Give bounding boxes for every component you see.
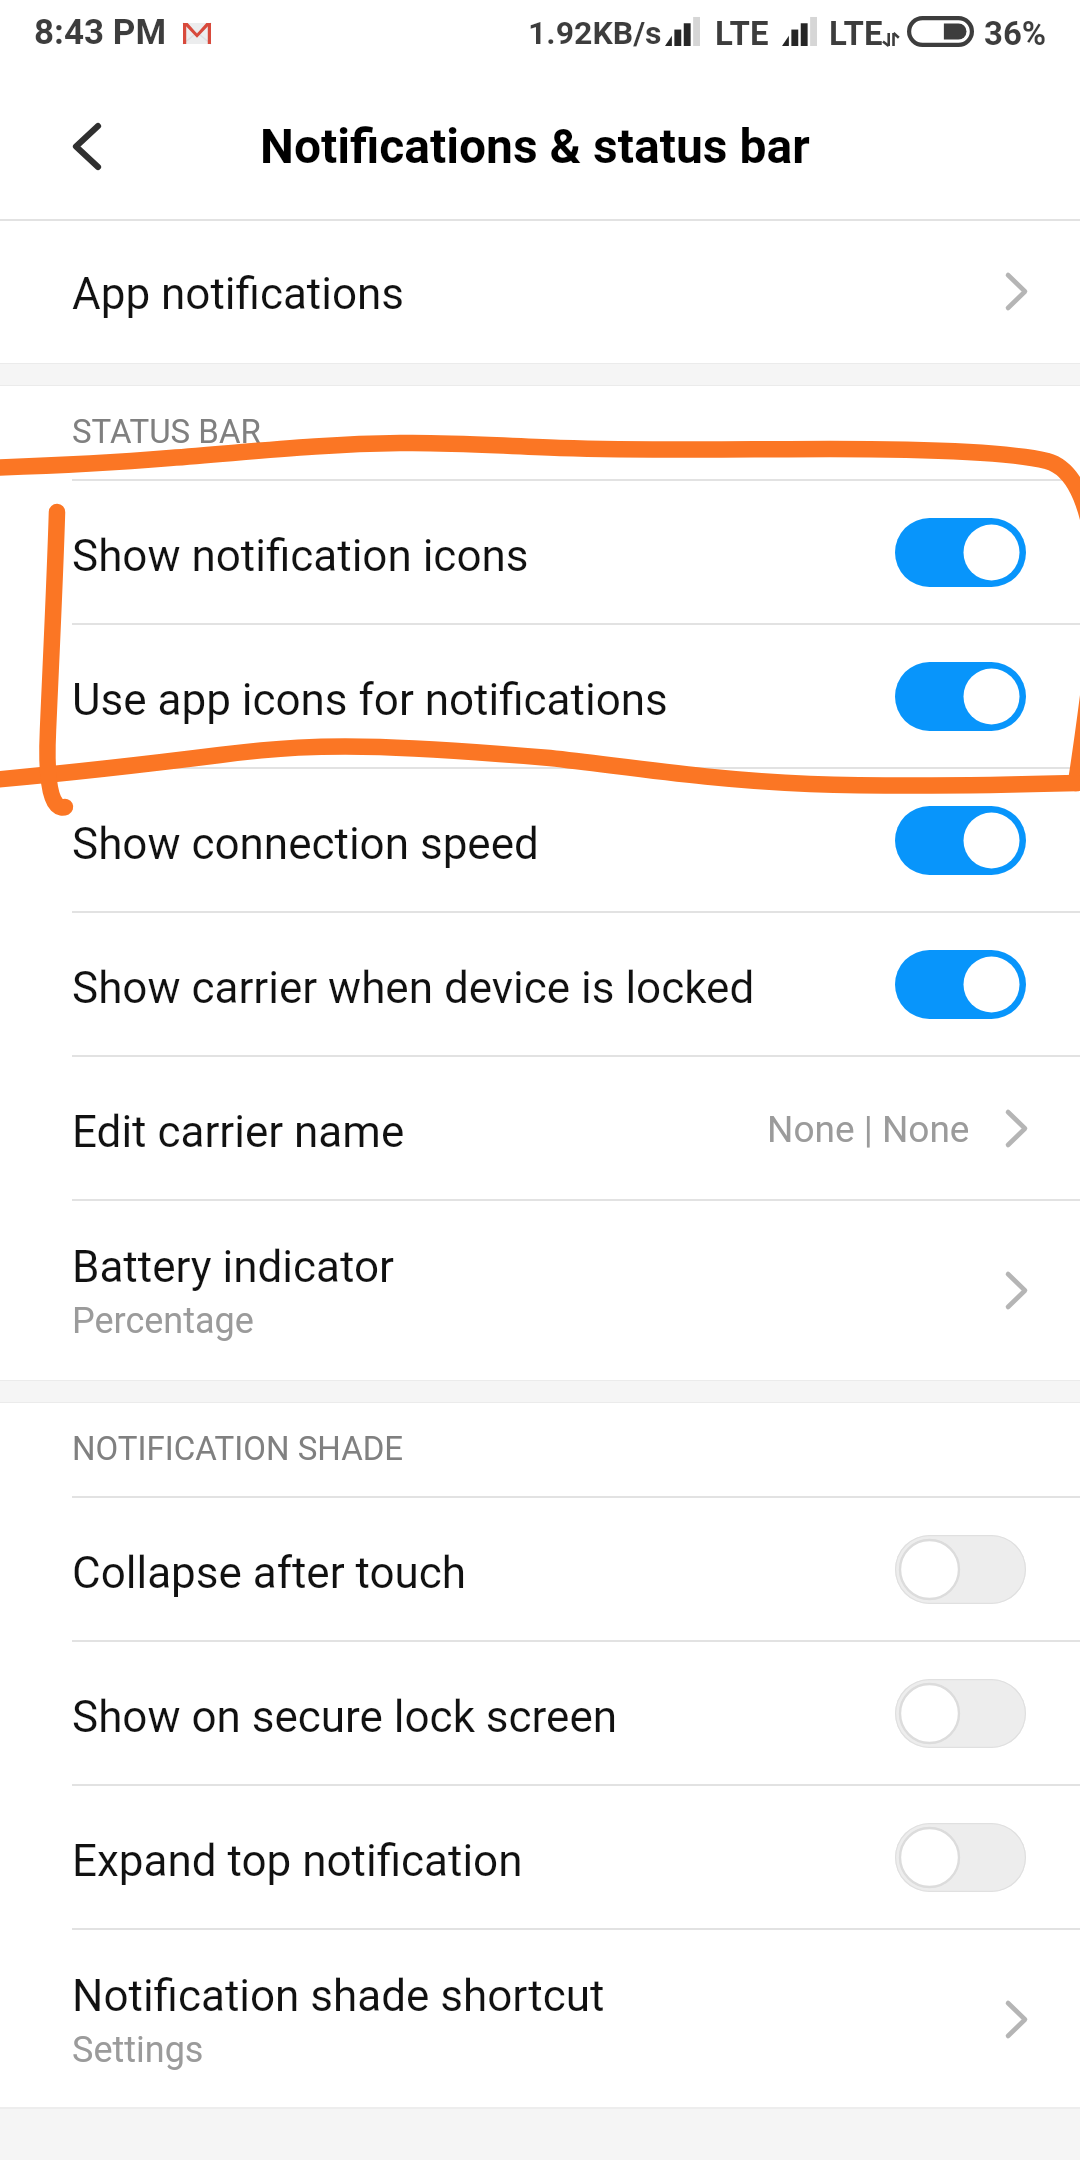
staticText: Collapse after touch [72,1547,467,1599]
button[interactable]: Turn off Use app icons for notifications [895,662,1026,731]
button[interactable]: Edit carrier name [0,1057,1080,1200]
staticText: LTE [715,14,769,53]
staticText: None | None [767,1108,970,1151]
button[interactable]: Show notification icons [0,481,1080,624]
staticText: Show on secure lock screen [72,1691,618,1743]
staticText: 36% [984,14,1047,53]
staticText: 8:43 PM [34,12,167,53]
button[interactable]: App notifications [0,219,1080,363]
staticText: Percentage [72,1300,254,1342]
staticText: STATUS BAR [72,412,261,451]
button[interactable]: Back [48,110,126,188]
staticText: Show notification icons [72,530,529,582]
staticText: LTE [829,14,883,53]
staticText: Expand top notification [72,1835,523,1887]
button[interactable]: Show carrier when device is locked [0,913,1080,1056]
staticText: Notification shade shortcut [72,1970,605,2022]
button[interactable]: Turn off Show connection speed [895,806,1026,875]
staticText: NOTIFICATION SHADE [72,1429,404,1468]
staticText: Use app icons for notifications [72,674,668,726]
button[interactable]: Show connection speed [0,769,1080,912]
button[interactable]: Expand top notification [0,1786,1080,1929]
button[interactable]: Collapse after touch [0,1498,1080,1641]
button[interactable]: Turn off Show carrier when device is loc… [895,950,1026,1019]
staticText: 1.92KB/s [528,14,662,52]
staticText: App notifications [72,268,405,320]
button[interactable]: Use app icons for notifications [0,625,1080,768]
button[interactable]: Notification shade shortcut [0,1930,1080,2109]
staticText: Show carrier when device is locked [72,962,755,1014]
staticText: Battery indicator [72,1241,394,1293]
staticText: Edit carrier name [72,1106,405,1158]
button[interactable]: Turn on Show on secure lock screen [895,1679,1026,1748]
staticText: Settings [72,2029,204,2071]
button[interactable]: Show on secure lock screen [0,1642,1080,1785]
button[interactable]: Turn off Show notification icons [895,518,1026,587]
button[interactable]: Battery indicator [0,1201,1080,1380]
button[interactable]: Turn on Expand top notification [895,1823,1026,1892]
staticText: Show connection speed [72,818,539,870]
staticText: Notifications & status bar [260,118,810,174]
button[interactable]: Turn on Collapse after touch [895,1535,1026,1604]
